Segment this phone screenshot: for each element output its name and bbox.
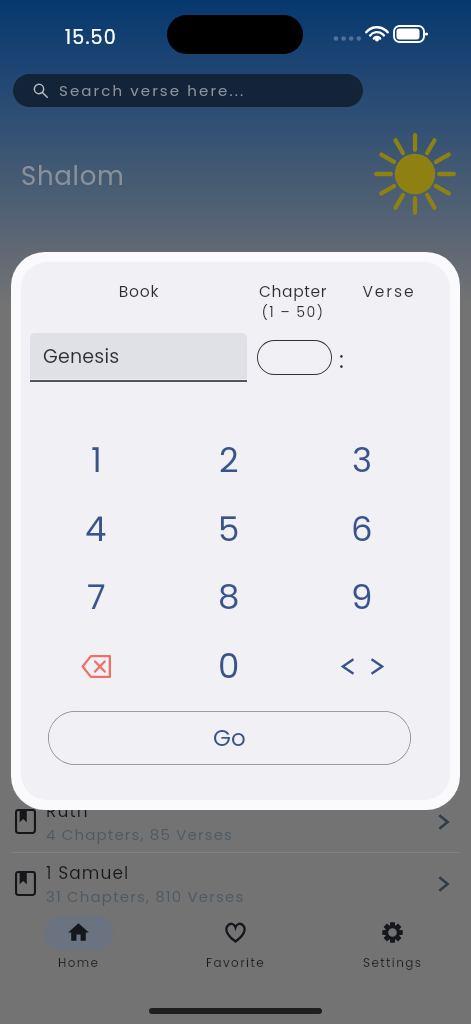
button[interactable]: 9 <box>318 563 406 631</box>
staticText: 5 <box>218 505 240 553</box>
staticText: 4 Chapters, 85 Verses <box>46 824 234 845</box>
staticText: 0 <box>218 642 240 690</box>
staticText: 8 <box>218 573 240 621</box>
button[interactable]: Settings <box>314 915 471 971</box>
staticText: (1 – 50) <box>231 302 355 322</box>
staticText: 9 <box>351 573 373 621</box>
button[interactable]: Favorite <box>157 915 314 971</box>
staticText: 3 <box>352 436 373 484</box>
button[interactable]: Ruth <box>0 790 471 852</box>
staticText: 7 <box>87 573 106 621</box>
staticText: Genesis <box>43 343 120 370</box>
staticText: 4 <box>85 505 107 553</box>
button[interactable]: 2 <box>185 426 273 494</box>
other: Previous and next <box>342 658 383 675</box>
button[interactable]: 8 <box>185 563 273 631</box>
staticText: Ruth <box>46 799 89 823</box>
button[interactable]: 7 <box>52 563 140 631</box>
staticText: Home <box>58 954 100 971</box>
button[interactable]: 1 <box>52 426 140 494</box>
button[interactable]: 0 <box>185 632 273 700</box>
staticText: 1 Samuel <box>46 861 130 885</box>
button[interactable]: Home <box>0 915 157 971</box>
button[interactable]: Previous and next <box>318 632 406 700</box>
staticText: Search verse here... <box>59 80 246 101</box>
button[interactable]: 3 <box>318 426 406 494</box>
staticText: Book <box>77 281 201 303</box>
button[interactable]: Search verse here... <box>13 74 363 107</box>
button[interactable]: Chapter input <box>257 340 332 375</box>
button[interactable]: Genesis <box>30 333 247 379</box>
staticText: 2 <box>219 436 239 484</box>
staticText: Settings <box>363 954 423 971</box>
staticText: : <box>339 344 344 376</box>
button[interactable]: 6 <box>318 495 406 563</box>
staticText: 15.50 <box>65 24 117 51</box>
staticText: Favorite <box>206 954 266 971</box>
staticText: 31 Chapters, 810 Verses <box>46 886 245 907</box>
button[interactable]: Backspace <box>52 632 140 700</box>
staticText: Go <box>213 722 247 754</box>
staticText: 1 <box>91 436 102 484</box>
button[interactable]: 4 <box>52 495 140 563</box>
button[interactable]: 5 <box>185 495 273 563</box>
staticText: 6 <box>351 505 373 553</box>
staticText: Shalom <box>21 158 125 194</box>
staticText: Verse <box>327 281 450 303</box>
other: Backspace <box>81 655 111 678</box>
button[interactable]: 1 Samuel <box>0 852 471 914</box>
button[interactable]: Go <box>48 711 411 765</box>
staticText: Chapter <box>231 281 355 303</box>
